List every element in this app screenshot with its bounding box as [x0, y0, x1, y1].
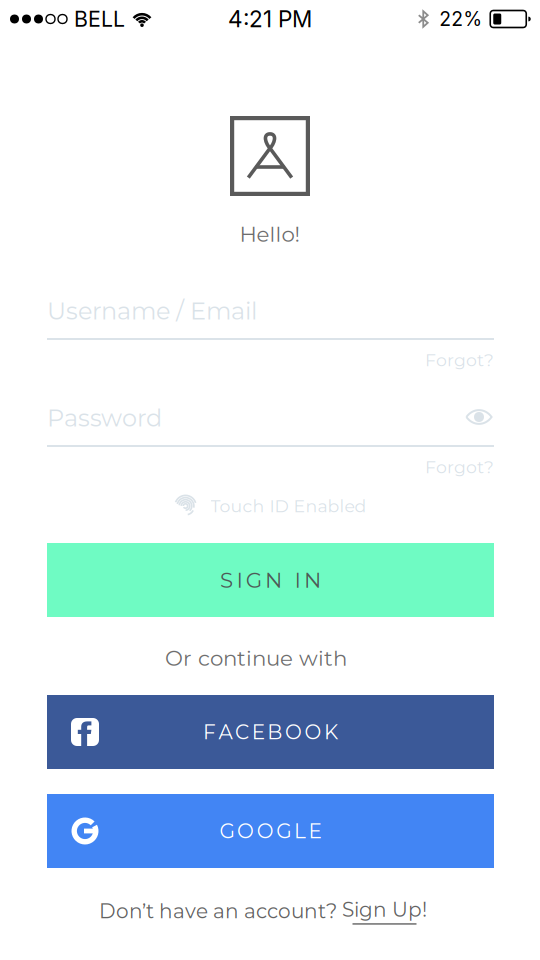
staticText: O: [304, 720, 321, 744]
staticText: G: [219, 819, 234, 843]
staticText: Don’t have an account?: [99, 899, 342, 923]
staticText: O: [237, 819, 254, 843]
staticText: Username / Email: [47, 296, 257, 326]
staticText: Or continue with: [165, 645, 347, 671]
staticText: BELL: [74, 6, 125, 32]
staticText: E: [252, 720, 265, 744]
staticText: I: [295, 567, 301, 593]
staticText: Sign Up!: [342, 897, 427, 922]
staticText: O: [257, 819, 274, 843]
staticText: N: [304, 567, 321, 593]
button[interactable]: Sign Up!: [342, 897, 427, 925]
staticText: K: [324, 720, 338, 744]
staticText: Forgot?: [425, 456, 494, 477]
staticText: E: [308, 819, 321, 843]
staticText: G: [276, 819, 291, 843]
staticText: O: [285, 720, 302, 744]
staticText: N: [265, 567, 282, 593]
staticText: 4:21 PM: [228, 5, 312, 33]
button[interactable]: Forgot?: [416, 346, 494, 374]
staticText: F: [203, 720, 216, 744]
staticText: Password: [47, 403, 162, 433]
button[interactable]: F: [47, 695, 494, 769]
staticText: Forgot?: [425, 349, 494, 370]
button[interactable]: G: [47, 794, 494, 868]
staticText: S: [220, 567, 233, 593]
staticText: I: [236, 567, 242, 593]
button[interactable]: S: [47, 543, 494, 617]
staticText: B: [267, 720, 282, 744]
staticText: A: [218, 720, 232, 744]
staticText: L: [294, 819, 306, 843]
staticText: G: [246, 567, 262, 593]
staticText: Hello!: [239, 221, 300, 247]
staticText: Touch ID Enabled: [210, 495, 366, 516]
button[interactable]: Forgot?: [416, 453, 494, 481]
staticText: C: [235, 720, 249, 744]
staticText: 22%: [439, 7, 482, 31]
button[interactable]: Show password: [465, 407, 493, 427]
